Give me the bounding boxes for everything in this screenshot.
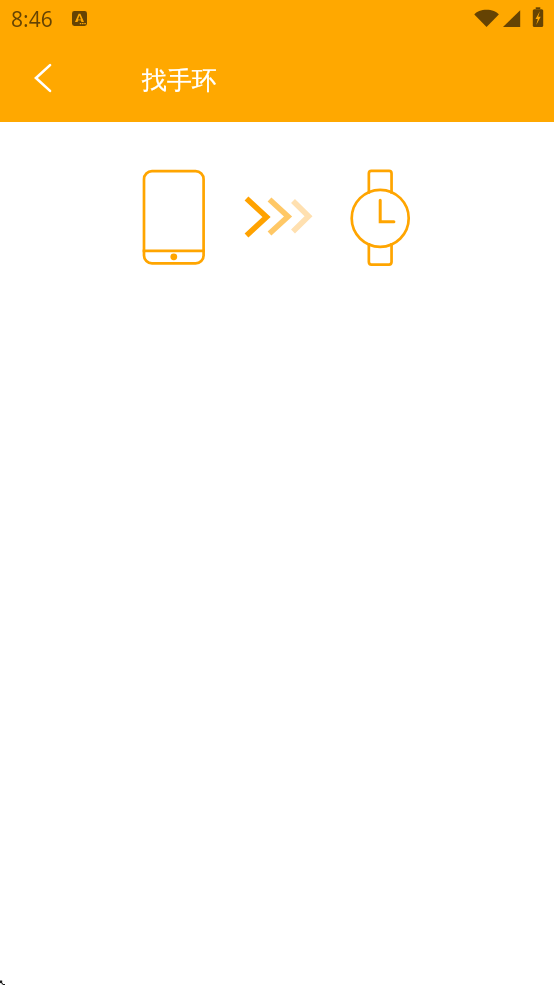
button[interactable]: Searching for band bbox=[0, 0, 554, 190]
button[interactable]: Back bbox=[19, 54, 67, 102]
staticText: 找手环 bbox=[142, 65, 217, 96]
staticText: 8:46 bbox=[11, 5, 53, 34]
